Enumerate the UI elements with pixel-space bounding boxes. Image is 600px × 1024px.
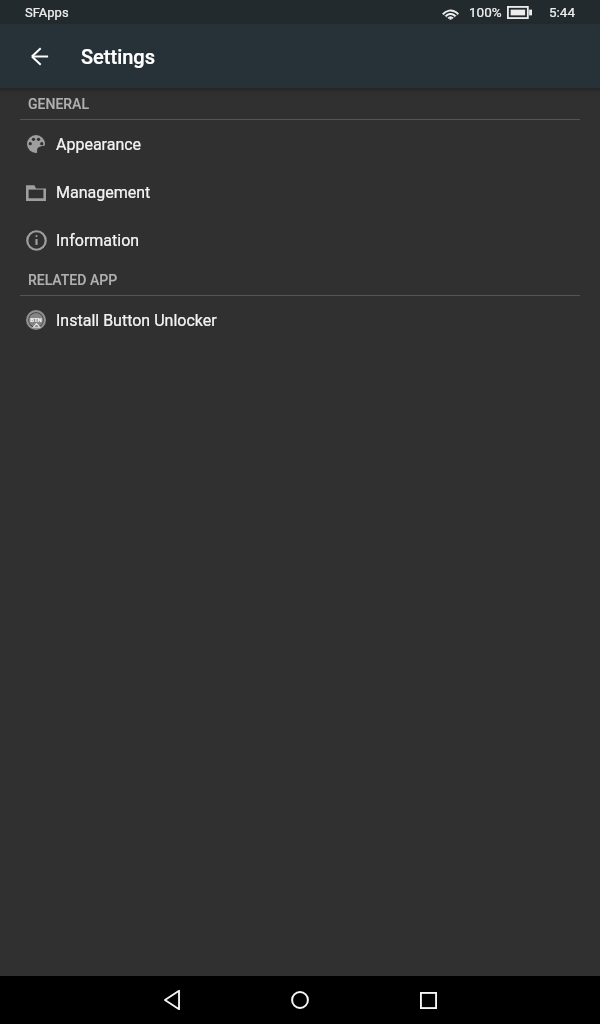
staticText: GENERAL — [28, 96, 89, 112]
staticText: BTN — [30, 316, 42, 323]
button[interactable]: Information — [0, 216, 600, 264]
staticText: 5:44 — [549, 4, 576, 20]
button[interactable]: BTN — [0, 296, 600, 344]
staticText: Install Button Unlocker — [56, 311, 217, 330]
staticText: Management — [56, 183, 151, 202]
staticText: 100% — [469, 4, 502, 20]
button[interactable]: Recent apps — [404, 976, 452, 1024]
button[interactable]: Management — [0, 168, 600, 216]
button[interactable]: Back — [148, 976, 196, 1024]
staticText: RELATED APP — [28, 272, 118, 288]
staticText: Information — [56, 231, 140, 250]
button[interactable]: Appearance — [0, 120, 600, 168]
staticText: Settings — [81, 45, 156, 68]
staticText: Appearance — [56, 135, 142, 154]
button[interactable]: Home — [276, 976, 324, 1024]
staticText: SFApps — [25, 5, 69, 20]
button[interactable]: Navigate back — [16, 32, 64, 80]
